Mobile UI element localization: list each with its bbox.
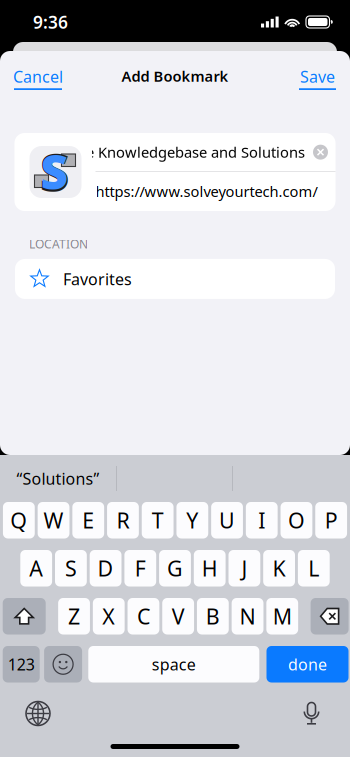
button[interactable]: B bbox=[197, 598, 229, 634]
staticText: J bbox=[241, 554, 247, 582]
staticText: A bbox=[29, 554, 43, 582]
staticText: E bbox=[82, 506, 94, 534]
staticText: Z bbox=[68, 602, 80, 630]
staticText: D bbox=[98, 554, 114, 582]
staticText: K bbox=[273, 554, 286, 582]
button[interactable]: done bbox=[266, 646, 348, 682]
button[interactable]: E bbox=[72, 502, 104, 538]
button[interactable]: Clear text bbox=[313, 145, 328, 160]
button[interactable]: Next keyboard bbox=[26, 701, 50, 725]
button[interactable]: K bbox=[263, 550, 295, 586]
button[interactable]: space bbox=[88, 646, 259, 682]
staticText: P bbox=[325, 506, 338, 534]
staticText: L bbox=[308, 554, 319, 582]
staticText: W bbox=[44, 506, 64, 534]
staticText: space bbox=[152, 654, 196, 675]
staticText: T bbox=[152, 506, 164, 534]
button[interactable]: H bbox=[194, 550, 226, 586]
button[interactable]: Favorites bbox=[15, 259, 335, 299]
staticText: G bbox=[167, 554, 183, 582]
button[interactable]: V bbox=[162, 598, 194, 634]
staticText: Q bbox=[10, 506, 27, 534]
button[interactable]: S bbox=[55, 550, 87, 586]
button[interactable]: Save bbox=[299, 57, 350, 99]
button[interactable]: D bbox=[90, 550, 121, 586]
button[interactable]: N bbox=[232, 598, 263, 634]
staticText: done bbox=[288, 654, 327, 675]
staticText: “Solutions” bbox=[16, 468, 99, 489]
staticText: LOCATION bbox=[29, 236, 88, 252]
button[interactable]: I bbox=[246, 502, 278, 538]
staticText: F bbox=[135, 554, 146, 582]
button[interactable]: M bbox=[266, 598, 298, 634]
staticText: Save bbox=[300, 66, 335, 87]
staticText: V bbox=[172, 602, 185, 630]
staticText: R bbox=[116, 506, 129, 534]
button[interactable]: O bbox=[280, 502, 312, 538]
staticText: S bbox=[40, 139, 68, 203]
button[interactable]: Z bbox=[58, 598, 90, 634]
button[interactable]: Q bbox=[3, 502, 35, 538]
button[interactable]: C bbox=[128, 598, 159, 634]
staticText: I bbox=[258, 506, 265, 534]
staticText: O bbox=[288, 506, 305, 534]
staticText: Favorites bbox=[63, 268, 132, 289]
button[interactable]: Y bbox=[176, 502, 208, 538]
staticText: Online Knowledgebase and Solutions bbox=[49, 142, 305, 162]
staticText: 123 bbox=[8, 654, 35, 675]
button[interactable]: R bbox=[107, 502, 139, 538]
staticText: H bbox=[202, 554, 218, 582]
staticText: S bbox=[39, 136, 69, 206]
staticText: N bbox=[240, 602, 256, 630]
staticText: S bbox=[65, 554, 77, 582]
staticText: M bbox=[273, 602, 292, 630]
button[interactable]: L bbox=[298, 550, 330, 586]
staticText: Y bbox=[186, 506, 198, 534]
button[interactable]: F bbox=[124, 550, 156, 586]
button[interactable]: 123 bbox=[3, 646, 40, 682]
staticText: C bbox=[137, 602, 150, 630]
button[interactable]: X bbox=[93, 598, 125, 634]
button[interactable]: Shift bbox=[3, 598, 46, 634]
button[interactable]: W bbox=[38, 502, 69, 538]
staticText: X bbox=[102, 602, 115, 630]
staticText: https://www.solveyourtech.com/ bbox=[95, 182, 317, 201]
button[interactable]: U bbox=[211, 502, 243, 538]
button[interactable]: A bbox=[20, 550, 52, 586]
staticText: U bbox=[219, 506, 235, 534]
button[interactable]: Delete bbox=[311, 598, 349, 634]
button[interactable]: Cancel bbox=[0, 57, 63, 99]
button[interactable]: Emoji bbox=[44, 646, 82, 682]
staticText: Cancel bbox=[13, 66, 63, 87]
button[interactable]: J bbox=[228, 550, 260, 586]
button[interactable]: Dictate bbox=[303, 700, 320, 726]
button[interactable]: P bbox=[315, 502, 347, 538]
staticText: 9:36 bbox=[33, 10, 68, 33]
staticText: B bbox=[206, 602, 220, 630]
button[interactable]: T bbox=[142, 502, 174, 538]
button[interactable]: G bbox=[159, 550, 191, 586]
staticText: Add Bookmark bbox=[121, 66, 228, 86]
